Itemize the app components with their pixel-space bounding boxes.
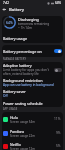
- staticText: 11%: [54, 117, 61, 121]
- staticText: ~ 1h 14m: [18, 26, 32, 30]
- staticText: Screen usage 54m: [10, 120, 35, 124]
- staticText: Netflix: [10, 142, 21, 147]
- staticText: Hulu: [10, 115, 18, 120]
- button[interactable]: Hulu: [2, 112, 63, 126]
- button[interactable]: Pandora: [2, 126, 63, 140]
- button[interactable]: Adaptive battery toggle: [53, 67, 62, 73]
- staticText: Battery usage: [3, 36, 28, 41]
- staticText: Screen usage 22m: [10, 134, 35, 138]
- staticText: Adaptive battery: [3, 63, 32, 68]
- staticText: tomorrow remaining: [18, 22, 50, 26]
- staticText: Background restriction: [3, 78, 43, 83]
- staticText: 7:42: [3, 1, 10, 5]
- staticText: 64%: [6, 20, 13, 25]
- staticText: Battery percentage on status bar: [3, 49, 53, 54]
- staticText: Power saving schedule: [3, 101, 43, 106]
- button[interactable]: Netflix: [2, 140, 63, 150]
- staticText: Battery: [9, 6, 25, 12]
- staticText: Battery saver: [3, 89, 26, 94]
- button[interactable]: Power saving schedule: [2, 99, 63, 107]
- staticText: 5%: [56, 144, 61, 148]
- button[interactable]: Battery usage: [2, 33, 63, 43]
- staticText: Pandora: [10, 129, 24, 134]
- staticText: Limit battery for apps you don't use: [3, 68, 53, 72]
- staticText: Screen usage 12m: [10, 147, 35, 150]
- button[interactable]: Battery saver: [2, 88, 63, 99]
- button[interactable]: Background restriction: [2, 77, 63, 88]
- button[interactable]: Battery percentage toggle: [53, 48, 62, 54]
- staticText: 64%: [55, 1, 62, 5]
- staticText: App can use battery in background: [3, 83, 54, 87]
- staticText: APP USAGE: [3, 107, 18, 111]
- button[interactable]: Adaptive battery: [2, 62, 63, 77]
- staticText: MANAGE BATTERY: [3, 57, 27, 61]
- staticText: often, extend battery life: [3, 72, 39, 76]
- staticText: Discharging: [18, 17, 39, 22]
- button[interactable]: Back: [1, 6, 7, 12]
- staticText: Off: [3, 94, 8, 98]
- button[interactable]: Battery percentage on status bar: [2, 45, 63, 57]
- staticText: 9%: [56, 131, 61, 135]
